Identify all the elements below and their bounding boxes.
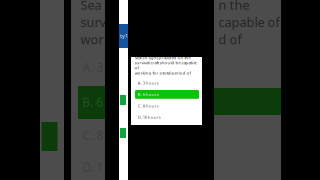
button[interactable]: D. 10 hours xyxy=(135,113,199,122)
staticText: B. 6 hours xyxy=(138,92,159,97)
button[interactable]: C. 8 hours xyxy=(135,101,199,110)
staticText: ty1 xyxy=(120,32,128,40)
staticText: C. 8 xyxy=(82,127,103,143)
staticText: D. 10 hours xyxy=(138,114,161,120)
staticText: B. 6 xyxy=(82,94,103,110)
staticText: capable of xyxy=(218,13,279,31)
staticText: A. 3 hours xyxy=(138,80,159,86)
staticText: Sea xyxy=(80,0,101,13)
staticText: wor xyxy=(80,31,103,48)
button[interactable]: B. 6 hours xyxy=(135,90,199,99)
staticText: C. 8 hours xyxy=(138,103,159,109)
staticText: d of xyxy=(218,31,241,48)
staticText: surv xyxy=(80,13,105,31)
staticText: n the xyxy=(218,0,249,13)
staticText: Search light provided on the survival cr… xyxy=(134,55,196,76)
staticText: D. 1 xyxy=(82,159,103,175)
staticText: A. 3 xyxy=(82,59,103,75)
button[interactable]: A. 3 hours xyxy=(135,79,199,87)
